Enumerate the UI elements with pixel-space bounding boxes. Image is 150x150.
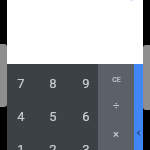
button[interactable]: 7 — [5, 67, 37, 100]
button[interactable]: CE — [98, 66, 135, 94]
staticText: 1 — [17, 142, 25, 150]
button[interactable]: Equals — [134, 64, 143, 150]
button[interactable]: × — [97, 120, 134, 148]
other: Scroll — [0, 44, 7, 107]
staticText: 7 — [17, 76, 25, 91]
button[interactable]: 3 — [70, 133, 102, 150]
button[interactable]: 4 — [5, 100, 37, 133]
staticText: 4 — [17, 109, 25, 124]
staticText: 5 — [49, 109, 57, 124]
button[interactable]: 8 — [37, 67, 69, 100]
staticText: × — [113, 128, 119, 141]
staticText: 8 — [49, 76, 57, 91]
button[interactable]: 6 — [70, 100, 102, 133]
staticText: 3 — [82, 142, 90, 150]
button[interactable]: 5 — [37, 100, 69, 133]
button[interactable]: 2 — [37, 133, 69, 150]
staticText: 9 — [82, 76, 90, 91]
button[interactable]: 1 — [5, 133, 37, 150]
staticText: CE — [112, 76, 121, 84]
button[interactable]: 9 — [70, 67, 102, 100]
staticText: 2 — [49, 142, 57, 150]
staticText: 6 — [82, 109, 90, 124]
other: Scroll — [143, 45, 150, 110]
staticText: ÷ — [113, 99, 120, 112]
button[interactable]: ÷ — [98, 91, 135, 119]
